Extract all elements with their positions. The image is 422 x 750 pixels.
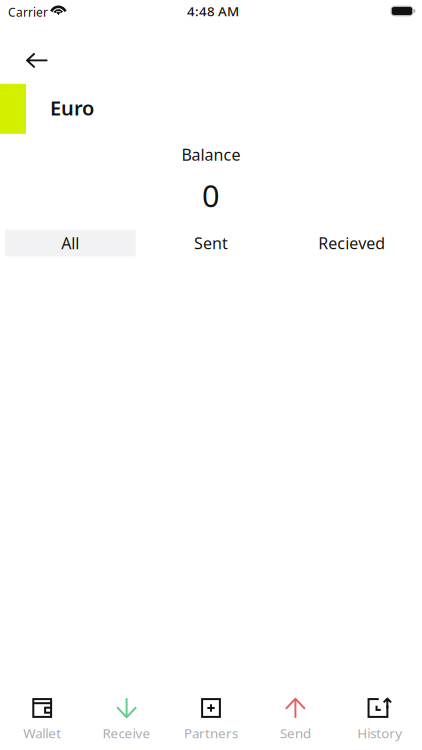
button[interactable]: Receive <box>84 682 169 750</box>
button[interactable]: Recieved <box>281 230 422 256</box>
staticText: Receive <box>103 724 151 742</box>
button[interactable]: Partners <box>169 682 253 750</box>
staticText: 0 <box>202 175 220 216</box>
staticText: Partners <box>184 724 238 742</box>
staticText: Send <box>280 724 311 742</box>
button[interactable]: Sent <box>141 230 281 256</box>
button[interactable]: Back <box>21 46 53 75</box>
staticText: History <box>357 724 402 742</box>
staticText: Sent <box>194 232 228 254</box>
button[interactable]: All <box>0 230 141 256</box>
staticText: All <box>61 232 79 254</box>
button[interactable]: History <box>338 682 422 750</box>
staticText: Euro <box>50 94 94 121</box>
staticText: Balance <box>181 144 240 165</box>
button[interactable]: Send <box>253 682 338 750</box>
staticText: 4:48 AM <box>187 2 239 20</box>
button[interactable]: Wallet <box>0 682 84 750</box>
staticText: Carrier <box>8 4 48 20</box>
staticText: Recieved <box>318 232 385 254</box>
staticText: Wallet <box>23 724 61 742</box>
